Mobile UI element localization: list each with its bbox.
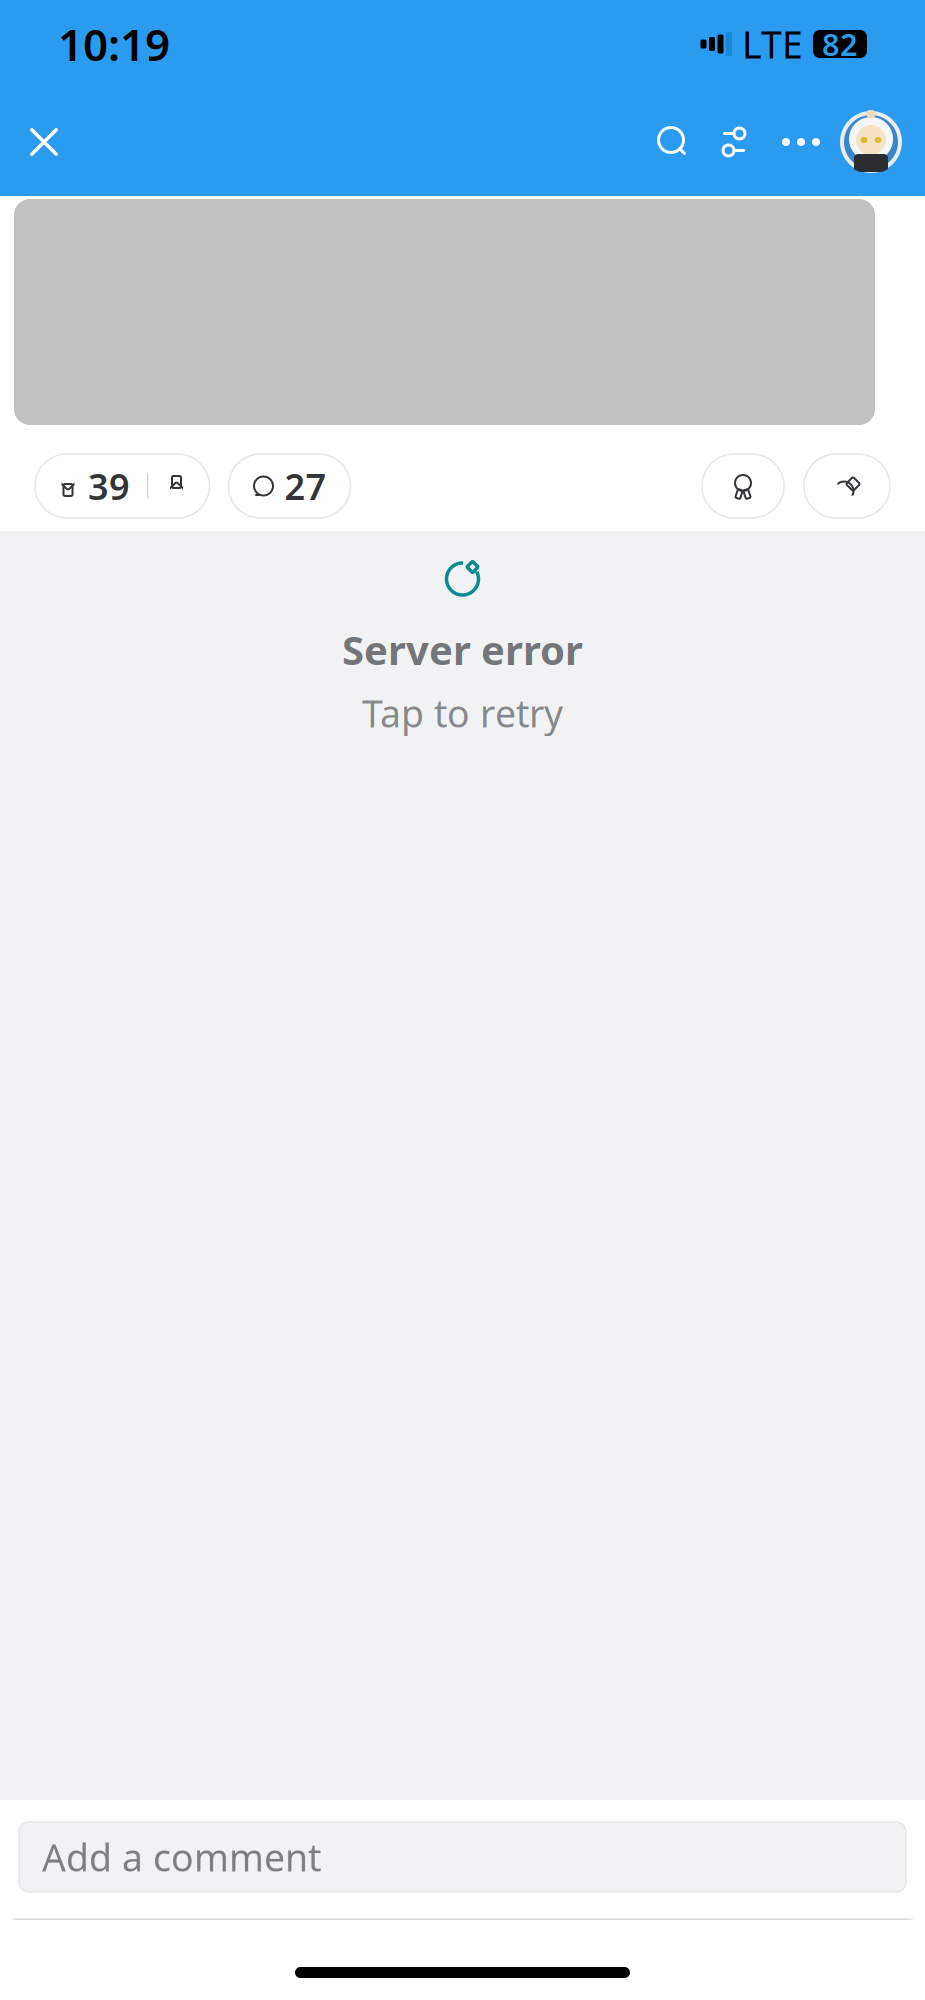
staticText: Tap to retry bbox=[362, 688, 563, 738]
button[interactable]: Search bbox=[655, 124, 691, 160]
staticText: LTE bbox=[742, 19, 803, 69]
button[interactable]: Sort comments bbox=[717, 125, 751, 159]
staticText: Server error bbox=[342, 623, 583, 676]
button[interactable]: Profile bbox=[839, 110, 903, 174]
button[interactable]: Close bbox=[12, 110, 76, 174]
staticText: 82 bbox=[822, 24, 858, 64]
staticText: 10:19 bbox=[58, 15, 170, 73]
staticText: 27 bbox=[284, 462, 326, 510]
button[interactable]: More options bbox=[775, 116, 827, 168]
staticText: Add a comment bbox=[42, 1832, 321, 1882]
staticText: 39 bbox=[88, 462, 130, 510]
button[interactable]: 27 bbox=[228, 454, 350, 518]
button[interactable]: Give award bbox=[702, 454, 784, 518]
button[interactable]: Add a comment bbox=[19, 1822, 906, 1892]
button[interactable]: Share bbox=[804, 454, 890, 518]
button[interactable]: 39 bbox=[35, 454, 209, 518]
button[interactable]: Server error bbox=[0, 545, 925, 752]
